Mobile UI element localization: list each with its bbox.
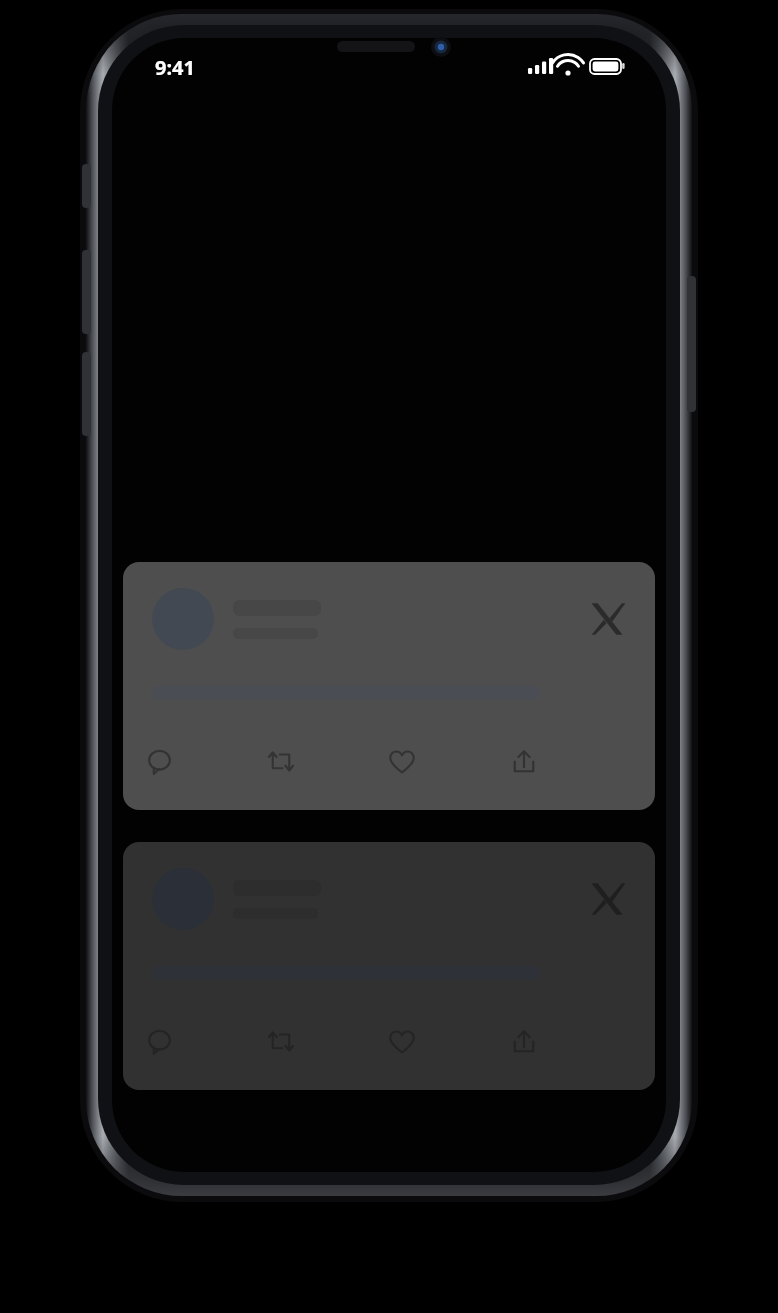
button[interactable]: Repost <box>266 742 387 782</box>
button[interactable]: X <box>585 877 629 921</box>
button[interactable]: X <box>123 562 655 810</box>
button[interactable]: Reply <box>145 742 266 782</box>
button[interactable]: X <box>585 597 629 641</box>
button[interactable]: Like <box>387 742 509 782</box>
button[interactable]: Share <box>509 742 631 782</box>
staticText: 9:41 <box>155 54 195 81</box>
